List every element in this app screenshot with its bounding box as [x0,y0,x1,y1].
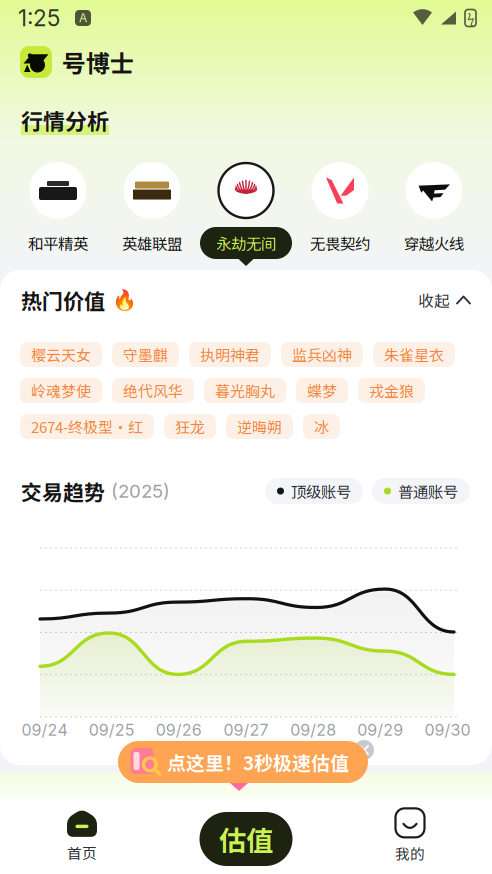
staticText: 行情分析 [21,104,109,136]
staticText: 狂龙 [175,416,205,437]
button[interactable]: 逆晦朔 [226,414,293,439]
staticText: 顶级账号 [291,480,351,502]
staticText: 我的 [395,842,425,864]
staticText: 交易趋势 [21,476,105,506]
button[interactable]: 冰 [303,414,340,439]
button[interactable]: 暮光胸丸 [204,378,286,403]
staticText: 点这里！3秒极速估值 [167,748,349,776]
staticText: 号博士 [62,45,134,79]
staticText: 蝶梦 [307,380,337,401]
staticText: ϟ [467,9,474,27]
staticText: 估值 [219,819,273,859]
button[interactable]: 狂龙 [164,414,216,439]
staticText: 09/27 [223,720,268,740]
staticText: 热门价值 [21,285,105,315]
button[interactable]: 绝代风华 [112,378,194,403]
staticText: 朱雀星衣 [384,344,444,365]
staticText: 穿越火线 [404,232,464,254]
button[interactable]: 我的 [328,798,492,874]
staticText: 暮光胸丸 [215,380,275,401]
staticText: 监兵凶神 [292,344,352,365]
staticText: 09/26 [156,720,202,740]
button[interactable]: 监兵凶神 [281,342,363,367]
staticText: 无畏契约 [310,232,370,254]
staticText: 执明神君 [200,344,260,365]
staticText: 岭魂梦使 [31,380,91,401]
staticText: 09/29 [357,720,403,740]
button[interactable]: 戎金狼 [358,378,425,403]
staticText: 09/24 [22,720,68,740]
button[interactable]: 无畏契约 [293,146,387,270]
staticText: 和平精英 [28,232,88,254]
staticText: 守墨麒 [123,344,168,365]
staticText: 首页 [67,842,97,863]
staticText: 🔥 [112,288,137,312]
staticText: 普通账号 [398,480,458,502]
button[interactable]: 永劫无间 [199,146,293,270]
button[interactable]: 和平精英 [11,146,105,270]
staticText: 09/25 [89,720,135,740]
staticText: 樱云天女 [31,344,91,365]
button[interactable]: 估值 [199,812,292,866]
button[interactable]: 守墨麒 [112,342,179,367]
staticText: 冰 [314,416,329,437]
button[interactable]: 执明神君 [189,342,271,367]
button[interactable]: 蝶梦 [296,378,348,403]
staticText: 绝代风华 [123,380,183,401]
staticText: 永劫无间 [216,232,276,254]
staticText: 1:25 [18,4,60,32]
button[interactable]: 樱云天女 [20,342,102,367]
button[interactable]: 朱雀星衣 [373,342,455,367]
staticText: 戎金狼 [369,380,414,401]
staticText: 英雄联盟 [122,232,182,254]
staticText: 2674-终极型·红 [31,416,143,437]
staticText: 09/28 [290,720,336,740]
button[interactable]: 2674-终极型·红 [20,414,154,439]
staticText: (2025) [111,480,170,502]
staticText: A [79,11,87,25]
button[interactable]: 首页 [0,798,164,874]
staticText: 逆晦朔 [237,416,282,437]
button[interactable]: 穿越火线 [387,146,481,270]
staticText: 09/30 [424,720,470,740]
button[interactable]: 岭魂梦使 [20,378,102,403]
button[interactable]: 收起 [418,289,470,311]
staticText: 收起 [418,289,450,311]
button[interactable]: 英雄联盟 [105,146,199,270]
